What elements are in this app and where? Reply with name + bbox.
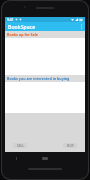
staticText: BUY xyxy=(67,144,74,148)
staticText: Books up for Sale xyxy=(7,32,38,37)
staticText: SELL xyxy=(17,144,24,148)
staticText: Books you are interested in buying xyxy=(7,76,70,81)
button[interactable]: More options xyxy=(77,22,85,31)
button[interactable]: BUY xyxy=(63,143,77,148)
button[interactable]: SELL xyxy=(13,143,27,148)
staticText: 9:41 xyxy=(7,17,14,22)
button[interactable]: Books up for Sale xyxy=(5,31,85,38)
button[interactable]: Books you are interested in buying xyxy=(5,75,85,82)
staticText: BookSpace xyxy=(8,23,36,30)
